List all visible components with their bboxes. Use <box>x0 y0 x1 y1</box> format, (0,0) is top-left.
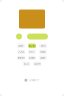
button[interactable]: Mode <box>27 33 48 39</box>
button[interactable]: ECO <box>23 61 30 66</box>
staticText: COOL <box>17 50 24 53</box>
button[interactable]: TIMER <box>28 55 36 60</box>
staticText: HEAT <box>40 50 46 53</box>
staticText: LIGHT <box>34 62 41 65</box>
staticText: SWING <box>17 56 25 59</box>
button[interactable]: LIGHT <box>34 61 41 66</box>
staticText: SLEEP <box>40 56 46 59</box>
button[interactable]: COOL <box>17 49 25 54</box>
button[interactable]: SLEEP <box>39 55 47 60</box>
button[interactable]: AUTO <box>28 43 36 48</box>
button[interactable]: TEMP <box>17 43 25 48</box>
staticText: AUTO <box>28 44 35 47</box>
staticText: FAN <box>40 44 45 47</box>
staticText: ECO <box>24 62 29 65</box>
button[interactable]: HEAT <box>39 49 47 54</box>
staticText: TEMP <box>18 44 24 47</box>
staticText: TIMER <box>28 56 35 59</box>
button[interactable]: SWING <box>17 55 25 60</box>
button[interactable]: FAN <box>39 43 47 48</box>
staticText: LUMARY <box>29 78 40 82</box>
staticText: DRY <box>29 50 35 53</box>
button[interactable]: DRY <box>28 49 36 54</box>
button[interactable]: Power <box>16 33 22 39</box>
